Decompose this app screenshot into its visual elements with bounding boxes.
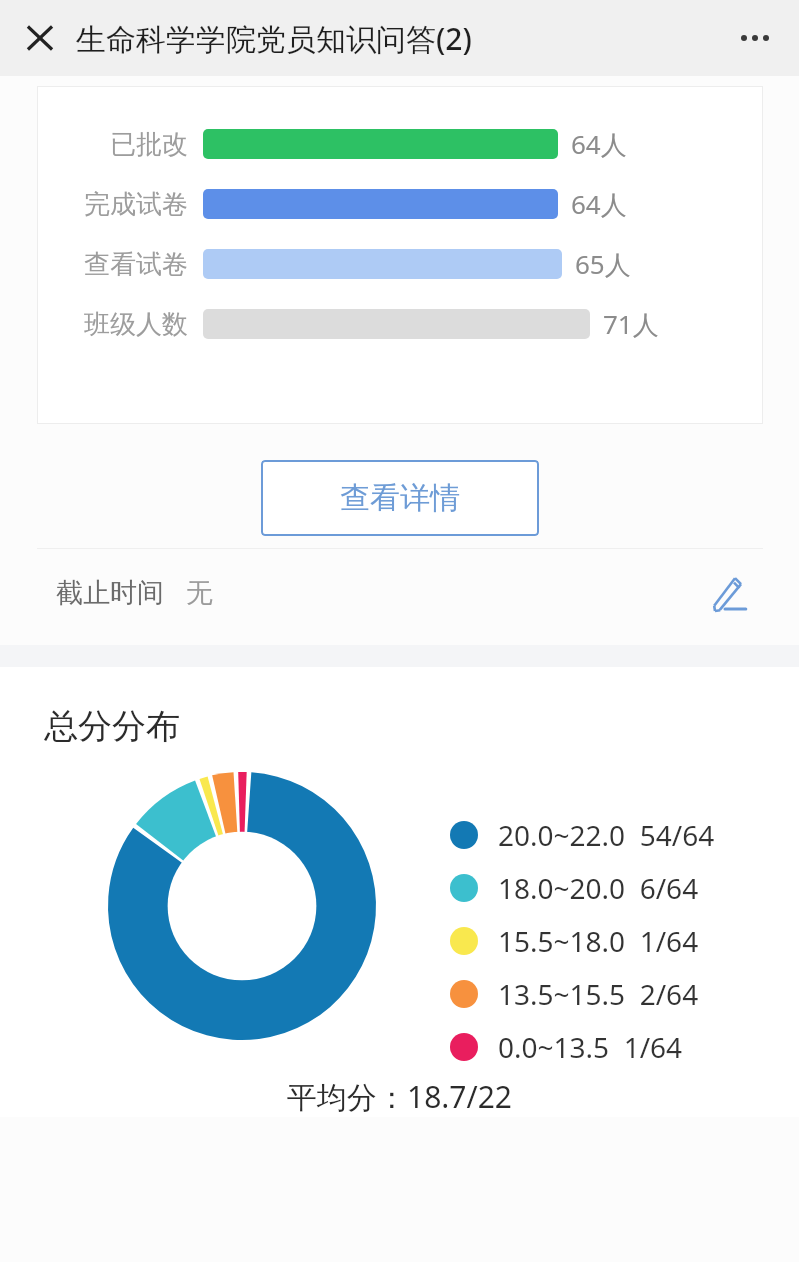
staticText: 查看详情 — [340, 479, 460, 517]
staticText: 65人 — [575, 246, 631, 282]
staticText: 64人 — [571, 126, 627, 162]
staticText: 0.0~13.5 1/64 — [498, 1028, 683, 1066]
button[interactable]: Edit deadline — [707, 571, 751, 615]
button[interactable]: 查看详情 — [261, 460, 539, 536]
staticText: 截止时间 — [56, 576, 164, 610]
staticText: 20.0~22.0 54/64 — [498, 816, 715, 854]
staticText: 查看试卷 — [84, 248, 188, 281]
staticText: 无 — [186, 576, 213, 610]
staticText: 完成试卷 — [84, 188, 188, 221]
staticText: 平均分：18.7/22 — [287, 1076, 512, 1117]
button[interactable]: More options — [731, 14, 779, 62]
staticText: 已批改 — [110, 128, 188, 161]
staticText: 18.0~20.0 6/64 — [498, 869, 699, 907]
staticText: 15.5~18.0 1/64 — [498, 922, 699, 960]
button[interactable]: 截止时间 — [0, 549, 799, 637]
staticText: 班级人数 — [84, 308, 188, 341]
staticText: 总分分布 — [44, 705, 180, 748]
staticText: 13.5~15.5 2/64 — [498, 975, 699, 1013]
button[interactable]: Close — [16, 14, 64, 62]
staticText: 71人 — [603, 306, 659, 342]
staticText: 生命科学学院党员知识问答(2) — [76, 18, 472, 59]
staticText: 64人 — [571, 186, 627, 222]
